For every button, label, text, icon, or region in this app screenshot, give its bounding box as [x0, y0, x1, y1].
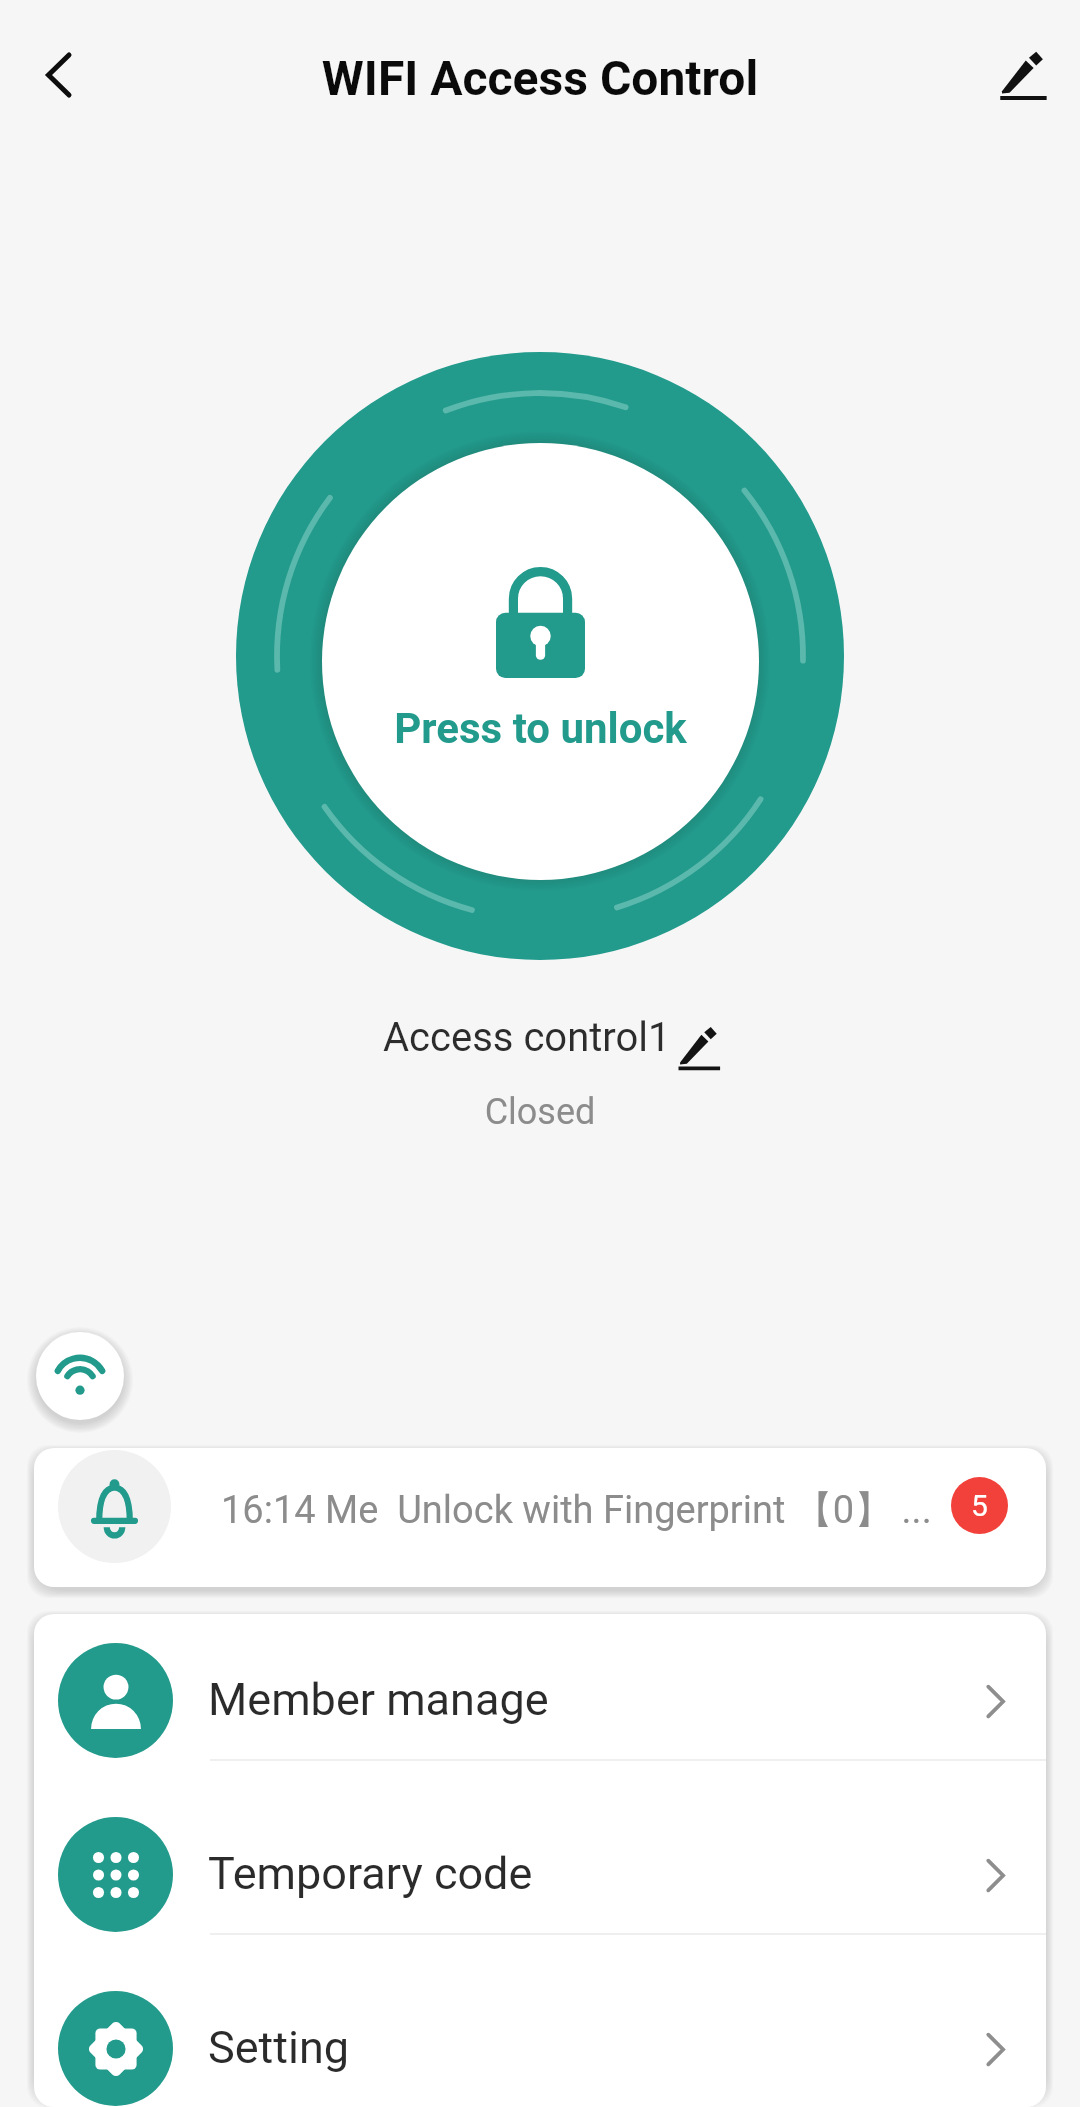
staticText: Temporary code: [208, 1847, 533, 1900]
staticText: Access control1: [383, 1014, 671, 1061]
button[interactable]: Rename device: [670, 1018, 726, 1074]
staticText: Closed: [0, 1091, 1080, 1133]
button[interactable]: Back: [16, 32, 102, 118]
staticText: 5: [971, 1488, 988, 1523]
staticText: Member manage: [208, 1673, 549, 1726]
button[interactable]: Member manage: [34, 1614, 1046, 1788]
staticText: WIFI Access Control: [0, 50, 1080, 106]
button[interactable]: Press to unlock: [236, 352, 844, 960]
staticText: Setting: [208, 2021, 350, 2074]
staticText: 16:14 Me Unlock with Fingerprint 【0】 ...: [221, 1486, 932, 1534]
staticText: Press to unlock: [322, 704, 759, 753]
button[interactable]: Edit: [979, 30, 1065, 116]
button[interactable]: Temporary code: [34, 1788, 1046, 1962]
button[interactable]: WiFi: [36, 1332, 124, 1420]
button[interactable]: 16:14 Me Unlock with Fingerprint 【0】 ...: [34, 1448, 1046, 1587]
button[interactable]: Setting: [34, 1962, 1046, 2107]
